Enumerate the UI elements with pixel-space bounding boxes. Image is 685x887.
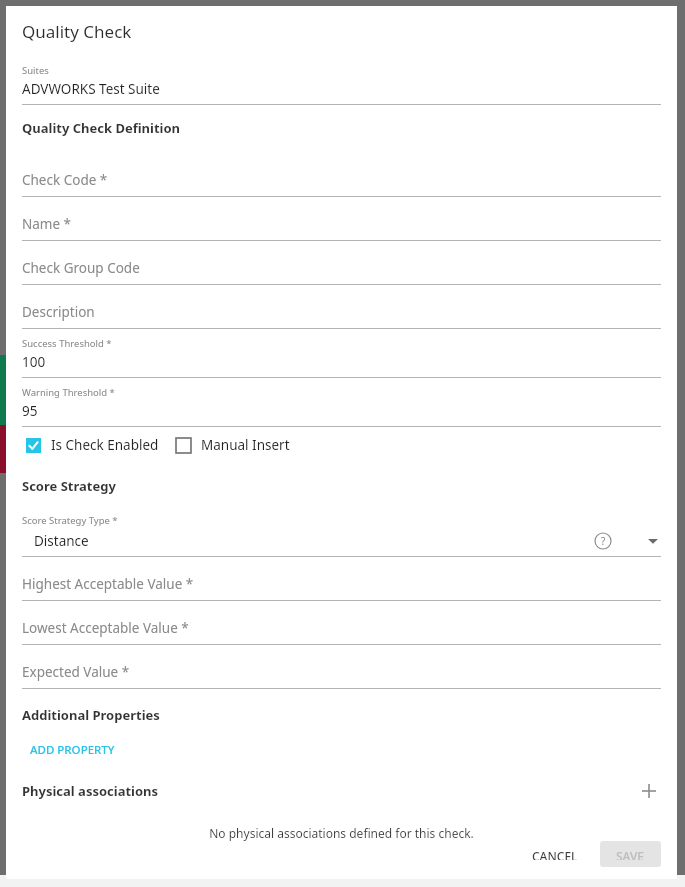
staticText: Is Check Enabled xyxy=(51,436,159,454)
staticText: Manual Insert xyxy=(201,436,290,454)
button[interactable]: Expected Value * xyxy=(22,645,661,689)
staticText: ? xyxy=(601,534,606,548)
staticText: No physical associations defined for thi… xyxy=(22,825,661,841)
button[interactable]: ADD PROPERTY xyxy=(22,738,123,762)
staticText: Additional Properties xyxy=(22,706,160,724)
staticText: Check Code * xyxy=(22,171,108,189)
button[interactable]: Suites xyxy=(22,56,661,105)
staticText: Quality Check Definition xyxy=(22,119,181,137)
staticText: Expected Value * xyxy=(22,663,130,681)
staticText: SAVE xyxy=(616,848,645,860)
button[interactable]: Name * xyxy=(22,197,661,241)
staticText: Success Threshold * xyxy=(22,337,112,350)
button[interactable]: SAVE xyxy=(600,841,661,867)
staticText: Lowest Acceptable Value * xyxy=(22,619,189,637)
staticText: Warning Threshold * xyxy=(22,386,115,399)
staticText: Score Strategy xyxy=(22,477,116,495)
button[interactable]: CANCEL xyxy=(522,841,588,867)
button[interactable]: Add physical association xyxy=(637,779,661,803)
button[interactable]: Success Threshold * xyxy=(22,329,661,378)
button[interactable]: Description xyxy=(22,285,661,329)
staticText: ADVWORKS Test Suite xyxy=(22,80,160,98)
staticText: Check Group Code xyxy=(22,259,140,277)
button[interactable]: Is Check Enabled xyxy=(22,436,159,454)
button[interactable]: Help xyxy=(594,532,612,550)
staticText: Distance xyxy=(34,532,89,550)
staticText: Description xyxy=(22,303,95,321)
staticText: Suites xyxy=(22,64,49,77)
button[interactable]: Open dropdown xyxy=(645,533,661,549)
button[interactable]: Score Strategy Type * xyxy=(22,514,661,557)
staticText: ADD PROPERTY xyxy=(30,742,115,758)
staticText: Score Strategy Type * xyxy=(22,514,118,527)
staticText: CANCEL xyxy=(532,848,578,860)
button[interactable]: Lowest Acceptable Value * xyxy=(22,601,661,645)
staticText: Highest Acceptable Value * xyxy=(22,575,194,593)
staticText: Physical associations xyxy=(22,782,159,800)
button[interactable]: Check Code * xyxy=(22,153,661,197)
staticText: Name * xyxy=(22,215,72,233)
button[interactable]: Check Group Code xyxy=(22,241,661,285)
staticText: 100 xyxy=(22,353,46,371)
button[interactable]: Manual Insert xyxy=(176,436,290,454)
button[interactable]: Warning Threshold * xyxy=(22,378,661,427)
staticText: Quality Check xyxy=(22,20,132,43)
button[interactable]: Highest Acceptable Value * xyxy=(22,557,661,601)
staticText: 95 xyxy=(22,402,38,420)
